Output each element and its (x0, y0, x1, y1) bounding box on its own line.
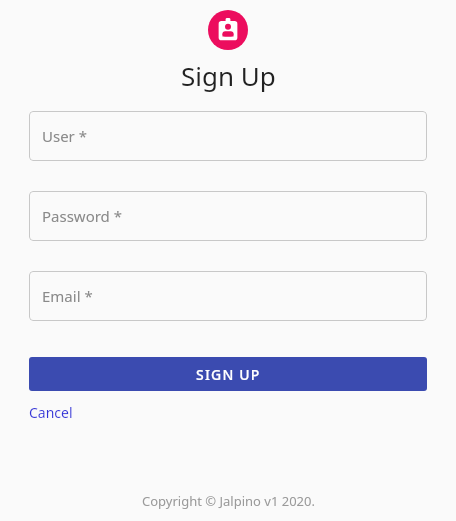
button[interactable]: Email * (29, 271, 427, 321)
staticText: Email * (42, 286, 93, 306)
button[interactable]: SIGN UP (29, 357, 427, 391)
other: Account badge (208, 10, 248, 50)
button[interactable]: Cancel (29, 403, 73, 422)
staticText: Cancel (29, 403, 73, 422)
staticText: Sign Up (181, 58, 276, 93)
staticText: User * (42, 126, 87, 146)
staticText: Copyright © Jalpino v1 2020. (142, 492, 315, 510)
staticText: Password * (42, 206, 123, 226)
button[interactable]: Password * (29, 191, 427, 241)
button[interactable]: User * (29, 111, 427, 161)
staticText: SIGN UP (196, 365, 261, 384)
